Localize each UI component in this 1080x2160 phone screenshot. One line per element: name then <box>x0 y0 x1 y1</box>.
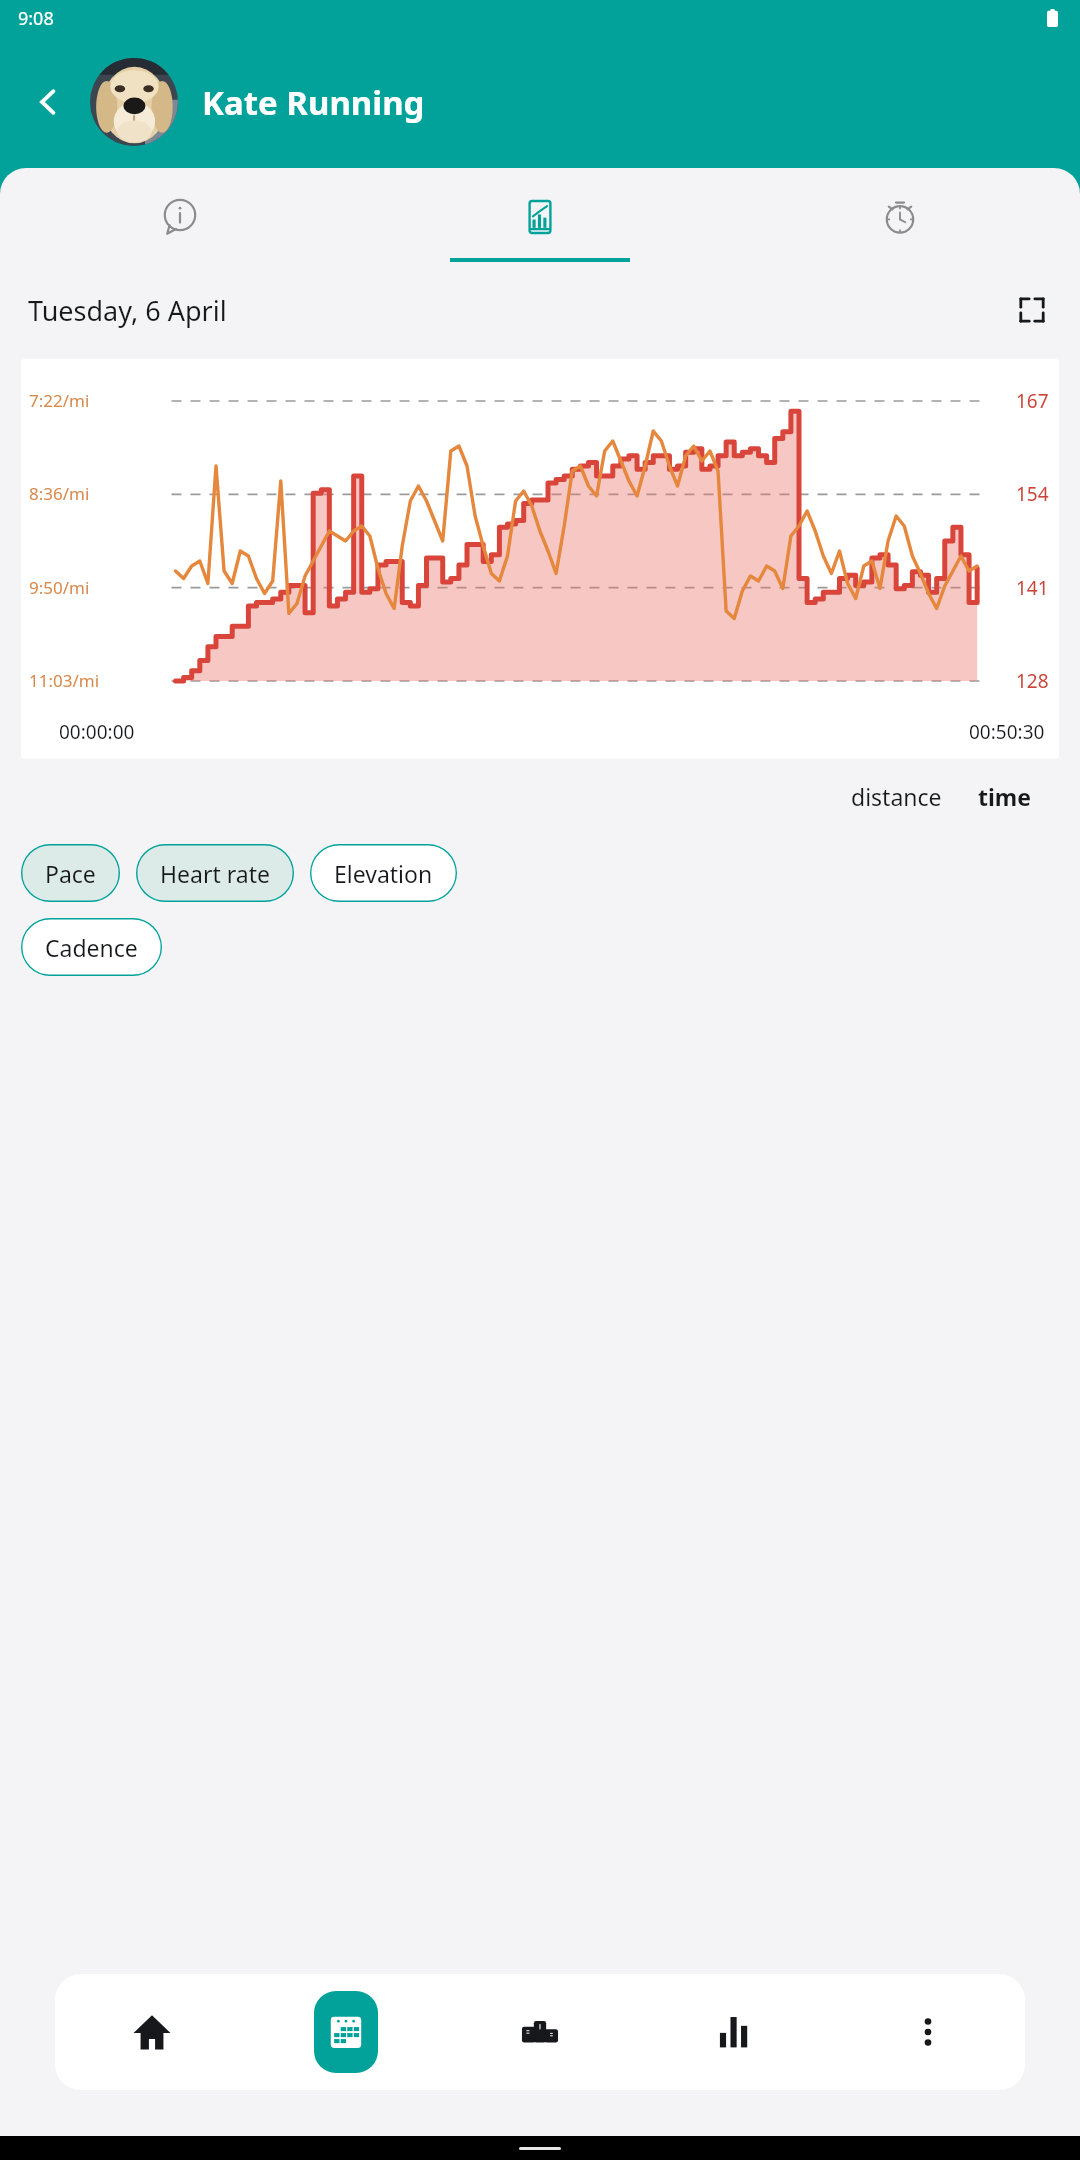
button[interactable]: distance <box>845 775 948 818</box>
button[interactable]: time <box>972 775 1038 818</box>
staticText: Heart rate <box>160 858 270 889</box>
staticText: 9:50/mi <box>29 576 90 599</box>
button[interactable]: Statistics <box>637 1974 831 2090</box>
button[interactable]: 7:22/mi <box>21 359 1059 759</box>
staticText: 7:22/mi <box>29 389 90 412</box>
button[interactable]: Fullscreen <box>1008 286 1056 334</box>
staticText: Tuesday, 6 April <box>28 292 227 329</box>
button[interactable]: Charts <box>360 188 720 246</box>
staticText: Elevation <box>334 858 433 889</box>
button[interactable]: Laps <box>720 188 1080 246</box>
staticText: 9:08 <box>18 6 54 31</box>
button[interactable]: Info <box>0 188 360 246</box>
staticText: 154 <box>1016 481 1049 507</box>
button[interactable]: More options <box>831 1974 1025 2090</box>
staticText: time <box>978 781 1032 812</box>
button[interactable]: Leaderboard <box>443 1974 637 2090</box>
staticText: Cadence <box>45 932 138 963</box>
button[interactable]: Heart rate <box>136 844 294 902</box>
button[interactable]: Pace <box>21 844 120 902</box>
button[interactable]: Back <box>20 74 76 130</box>
button[interactable]: Elevation <box>310 844 457 902</box>
button[interactable]: Home <box>55 1974 249 2090</box>
staticText: 167 <box>1016 388 1049 414</box>
staticText: 128 <box>1016 668 1049 694</box>
staticText: distance <box>851 781 942 812</box>
staticText: 141 <box>1016 575 1049 601</box>
staticText: Kate Running <box>202 80 425 125</box>
staticText: 00:50:30 <box>969 719 1045 745</box>
staticText: 11:03/mi <box>29 669 100 692</box>
staticText: 8:36/mi <box>29 482 90 505</box>
button[interactable]: Cadence <box>21 918 162 976</box>
button[interactable]: Calendar <box>314 1991 378 2073</box>
staticText: 00:00:00 <box>59 719 135 745</box>
staticText: Pace <box>45 858 96 889</box>
